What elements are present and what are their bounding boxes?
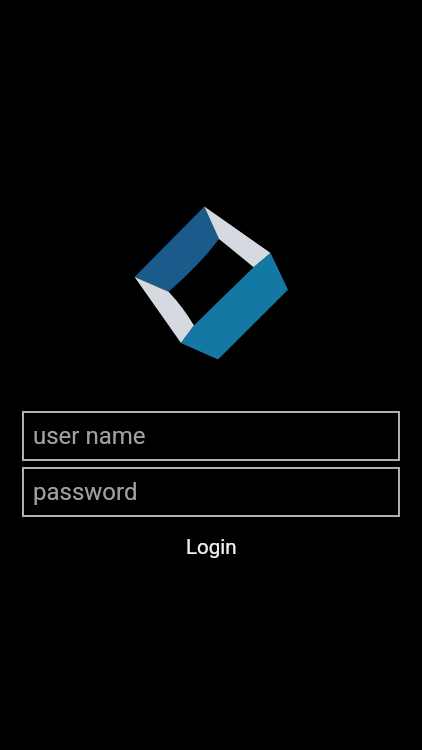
staticText: password bbox=[33, 478, 138, 506]
button[interactable]: password bbox=[22, 467, 400, 517]
staticText: user name bbox=[33, 422, 146, 450]
button[interactable]: user name bbox=[22, 411, 400, 461]
button[interactable]: Login bbox=[0, 517, 422, 561]
staticText: Login bbox=[186, 535, 237, 559]
other: App logo bbox=[130, 202, 296, 368]
